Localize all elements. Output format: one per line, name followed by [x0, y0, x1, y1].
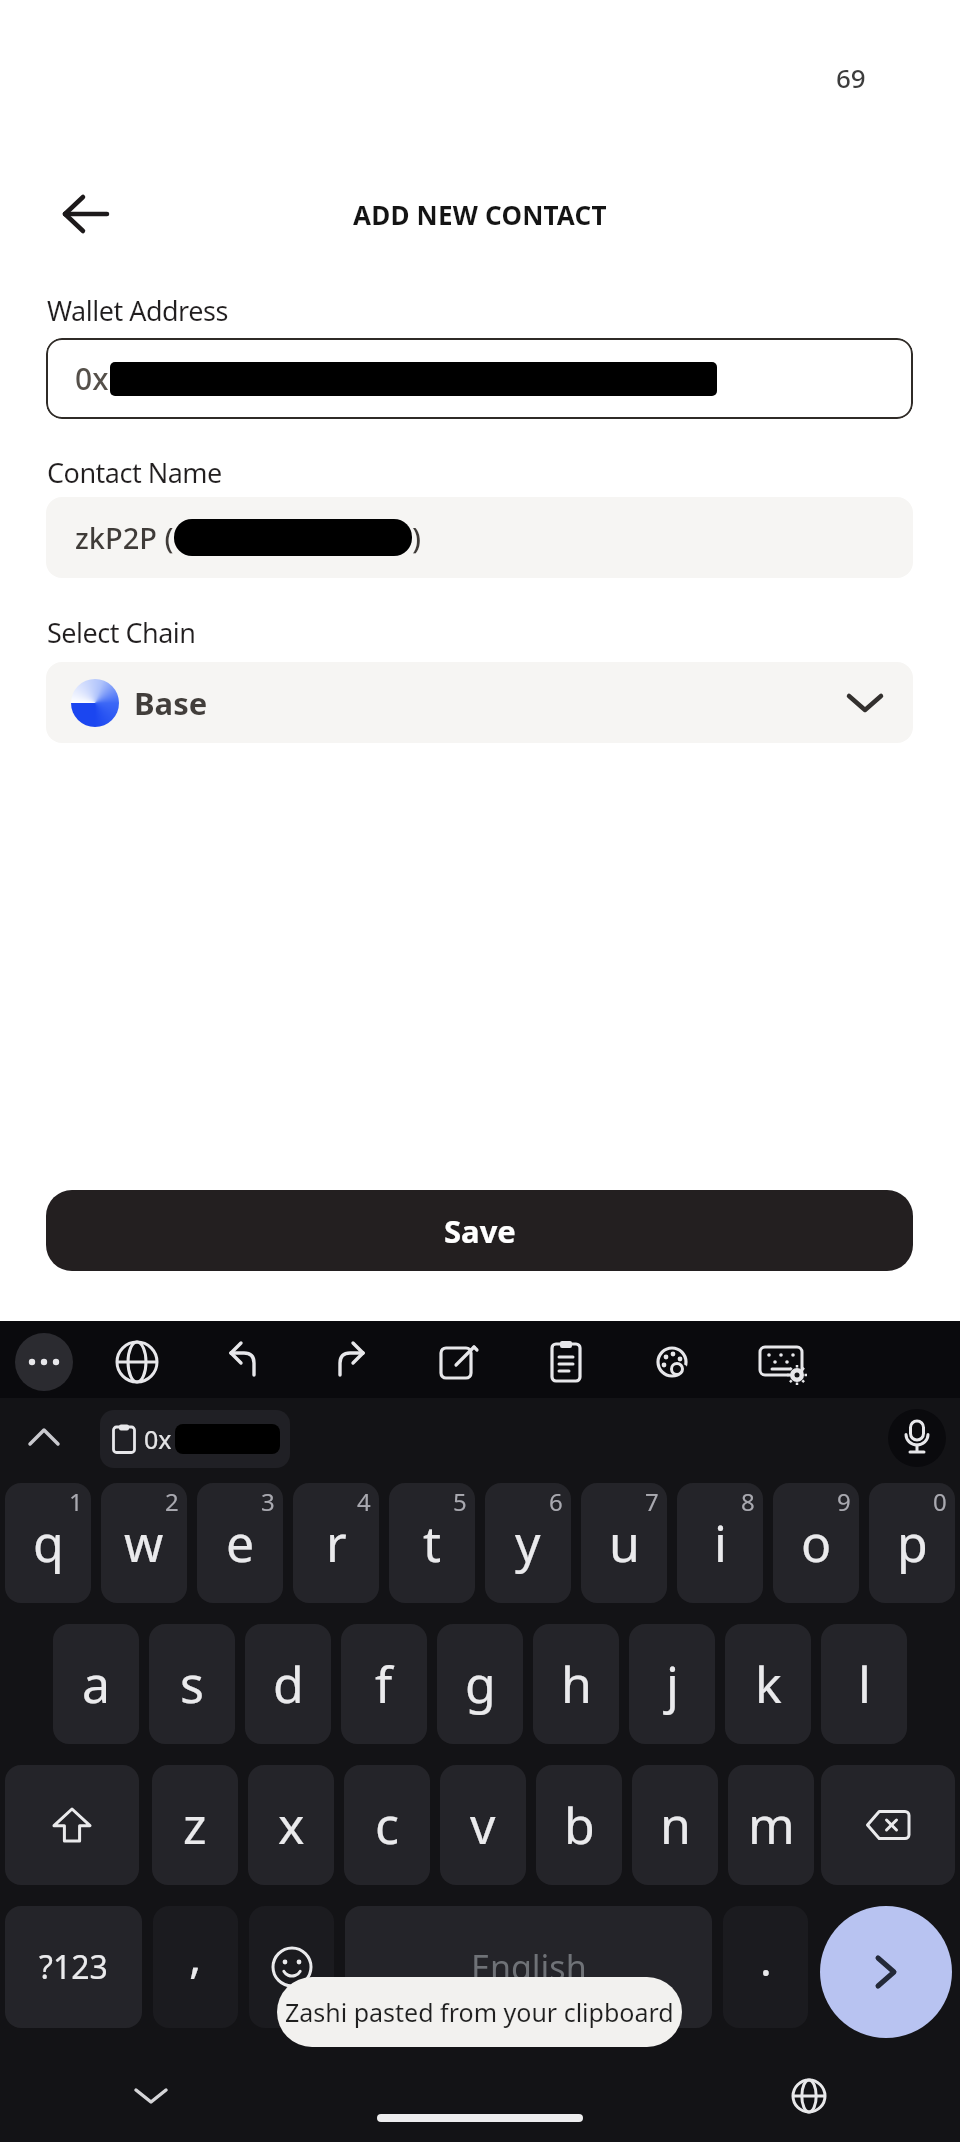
button[interactable]: h — [533, 1624, 619, 1744]
staticText: Wallet Address — [47, 292, 228, 329]
button[interactable]: ?123 — [5, 1906, 142, 2028]
staticText: v — [470, 1791, 496, 1859]
button[interactable]: s — [149, 1624, 235, 1744]
staticText: ADD NEW CONTACT — [353, 197, 607, 232]
button[interactable]: d — [245, 1624, 331, 1744]
button[interactable] — [133, 2086, 169, 2106]
staticText: 1 — [69, 1485, 83, 1518]
staticText: . — [760, 1929, 772, 1989]
button[interactable]: e — [197, 1483, 283, 1603]
staticText: y — [515, 1509, 541, 1577]
staticText: d — [273, 1650, 304, 1718]
button[interactable]: , — [153, 1906, 238, 2028]
button[interactable]: p — [869, 1483, 955, 1603]
button[interactable]: w — [101, 1483, 187, 1603]
staticText: 9 — [837, 1485, 851, 1518]
button[interactable]: . — [723, 1906, 808, 2028]
staticText: s — [180, 1650, 204, 1718]
button[interactable]: zkP2P ( — [46, 497, 913, 578]
staticText: , — [189, 1924, 202, 1987]
button[interactable] — [15, 1333, 73, 1391]
staticText: 2 — [165, 1485, 179, 1518]
staticText: u — [609, 1509, 640, 1577]
staticText: m — [748, 1791, 795, 1859]
staticText: n — [660, 1791, 691, 1859]
staticText: o — [801, 1509, 832, 1577]
button[interactable] — [757, 1338, 805, 1386]
button[interactable]: k — [725, 1624, 811, 1744]
staticText: 5 — [453, 1485, 467, 1518]
button[interactable] — [648, 1338, 696, 1386]
button[interactable] — [113, 1338, 161, 1386]
button[interactable]: n — [632, 1765, 718, 1885]
button[interactable] — [219, 1338, 267, 1386]
staticText: ?123 — [39, 1945, 108, 1989]
button[interactable]: m — [728, 1765, 814, 1885]
staticText: p — [897, 1509, 928, 1577]
button[interactable]: English — [345, 1906, 712, 2028]
button[interactable] — [62, 192, 110, 236]
button[interactable] — [542, 1338, 590, 1386]
staticText: r — [326, 1509, 347, 1577]
staticText: i — [714, 1509, 727, 1577]
staticText: t — [423, 1509, 442, 1577]
button[interactable]: c — [344, 1765, 430, 1885]
staticText: 0x — [75, 358, 109, 399]
button[interactable] — [888, 1409, 946, 1467]
button[interactable]: o — [773, 1483, 859, 1603]
staticText: z — [183, 1791, 207, 1859]
button[interactable]: u — [581, 1483, 667, 1603]
staticText: English — [471, 1944, 587, 1990]
button[interactable] — [327, 1338, 375, 1386]
staticText: f — [375, 1650, 393, 1718]
button[interactable]: q — [5, 1483, 91, 1603]
button[interactable] — [791, 2078, 827, 2114]
button[interactable]: a — [53, 1624, 139, 1744]
staticText: 7 — [645, 1485, 659, 1518]
staticText: 0 — [933, 1485, 947, 1518]
staticText: h — [561, 1650, 592, 1718]
button[interactable]: j — [629, 1624, 715, 1744]
staticText: 0x — [144, 1422, 172, 1456]
staticText: Select Chain — [47, 614, 196, 651]
button[interactable]: b — [536, 1765, 622, 1885]
button[interactable]: i — [677, 1483, 763, 1603]
staticText: c — [375, 1791, 399, 1859]
staticText: e — [226, 1509, 255, 1577]
staticText: k — [755, 1650, 782, 1718]
button[interactable]: 0x — [100, 1410, 290, 1468]
button[interactable]: t — [389, 1483, 475, 1603]
button[interactable]: v — [440, 1765, 526, 1885]
button[interactable] — [434, 1338, 482, 1386]
staticText: 69 — [836, 60, 866, 95]
button[interactable]: z — [152, 1765, 238, 1885]
button[interactable]: g — [437, 1624, 523, 1744]
button[interactable] — [26, 1426, 62, 1450]
staticText: 6 — [549, 1485, 563, 1518]
staticText: 4 — [357, 1485, 371, 1518]
staticText: b — [564, 1791, 595, 1859]
staticText: l — [858, 1650, 871, 1718]
staticText: 3 — [261, 1485, 275, 1518]
staticText: Base — [134, 682, 208, 724]
button[interactable] — [249, 1906, 334, 2028]
staticText: Save — [444, 1210, 516, 1252]
button[interactable]: Save — [46, 1190, 913, 1271]
staticText: zkP2P ( — [75, 518, 174, 557]
button[interactable]: y — [485, 1483, 571, 1603]
staticText: 8 — [741, 1485, 755, 1518]
staticText: w — [124, 1509, 164, 1577]
button[interactable]: Base — [46, 662, 913, 743]
staticText: Contact Name — [47, 454, 222, 491]
button[interactable]: x — [248, 1765, 334, 1885]
button[interactable]: r — [293, 1483, 379, 1603]
button[interactable]: 0x — [46, 338, 913, 419]
button[interactable]: l — [821, 1624, 907, 1744]
staticText: ) — [412, 518, 422, 557]
button[interactable] — [821, 1765, 955, 1885]
button[interactable]: f — [341, 1624, 427, 1744]
staticText: j — [666, 1650, 679, 1718]
button[interactable] — [5, 1765, 139, 1885]
staticText: Zashi pasted from your clipboard — [285, 1995, 674, 2029]
button[interactable] — [820, 1906, 952, 2038]
